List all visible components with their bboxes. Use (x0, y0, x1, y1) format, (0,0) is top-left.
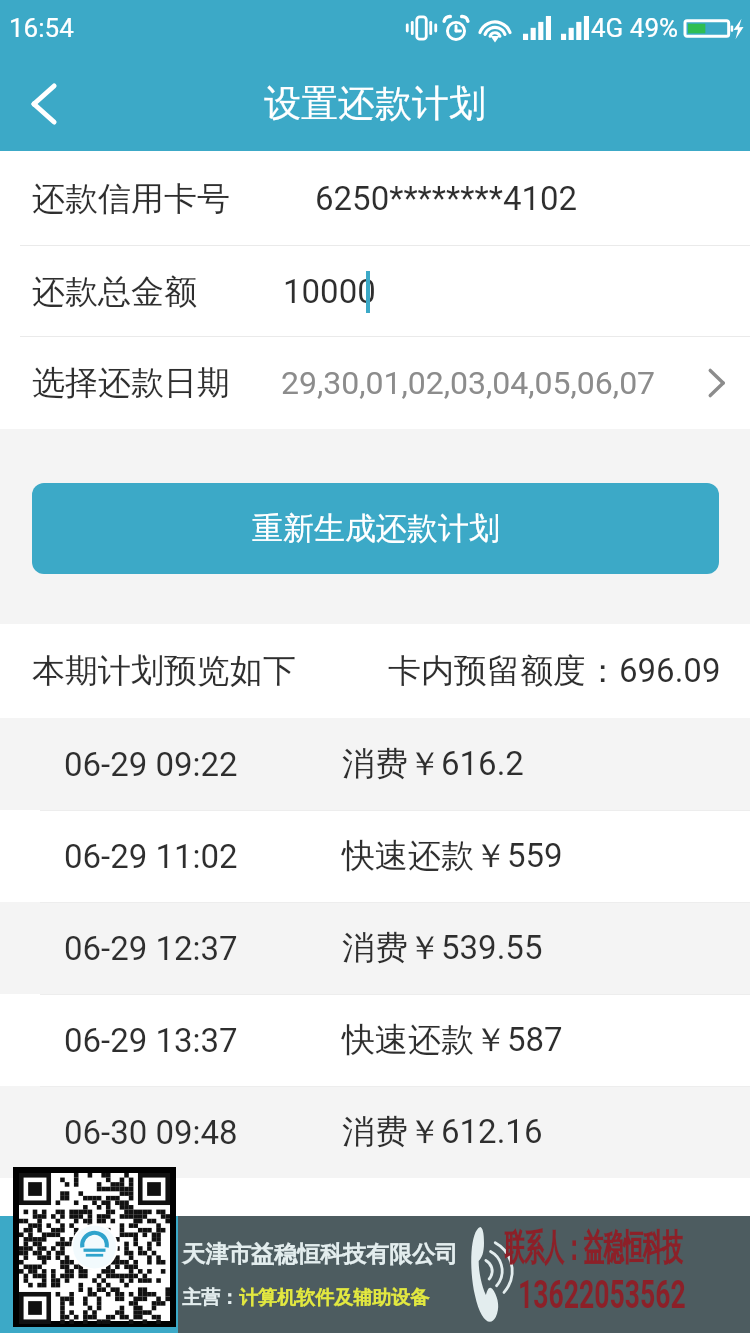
staticText: 快速还款￥559 (342, 835, 563, 877)
staticText: 29,30,01,02,03,04,05,06,07 (281, 364, 656, 402)
staticText: 消费￥616.2 (342, 743, 524, 785)
button[interactable]: 重新生成还款计划 (32, 483, 719, 574)
staticText: 06-29 09:22 (64, 745, 238, 784)
staticText: 消费￥612.16 (342, 1111, 543, 1153)
button[interactable]: 06-29 12:37 (0, 902, 750, 994)
button[interactable]: 06-30 09:48 (0, 1086, 750, 1178)
staticText: 06-29 13:37 (64, 1021, 238, 1060)
staticText: 主营： (182, 1286, 239, 1310)
staticText: 消费￥539.55 (342, 927, 543, 969)
staticText: 联系人：益稳恒科技 (504, 1225, 696, 1271)
staticText: 快速还款￥587 (342, 1019, 563, 1061)
staticText: 天津市益稳恒科技有限公司 (182, 1240, 458, 1269)
staticText: 06-29 11:02 (64, 837, 238, 876)
staticText: 重新生成还款计划 (252, 509, 500, 548)
staticText: 6250********4102 (315, 179, 578, 218)
staticText: 本期计划预览如下 (32, 650, 296, 692)
staticText: 13622053562 (518, 1271, 734, 1317)
staticText: 06-29 12:37 (64, 929, 238, 968)
button[interactable]: 选择还款日期 (0, 337, 750, 429)
staticText: 4G 49% (591, 13, 679, 43)
staticText: 卡内预留额度：696.09 (388, 650, 721, 692)
staticText: 还款总金额 (32, 271, 197, 313)
button[interactable]: 06-29 09:22 (0, 718, 750, 810)
staticText: 16:54 (9, 13, 74, 43)
staticText: 设置还款计划 (264, 80, 486, 127)
staticText: 选择还款日期 (32, 362, 230, 404)
button[interactable]: 06-29 11:02 (0, 810, 750, 902)
button[interactable]: 06-29 13:37 (0, 994, 750, 1086)
button[interactable]: Back (0, 56, 88, 151)
staticText: 计算机软件及辅助设备 (239, 1286, 429, 1310)
staticText: 还款信用卡号 (32, 178, 230, 220)
staticText: 06-30 09:48 (64, 1113, 238, 1152)
staticText: 10000 (283, 272, 376, 311)
